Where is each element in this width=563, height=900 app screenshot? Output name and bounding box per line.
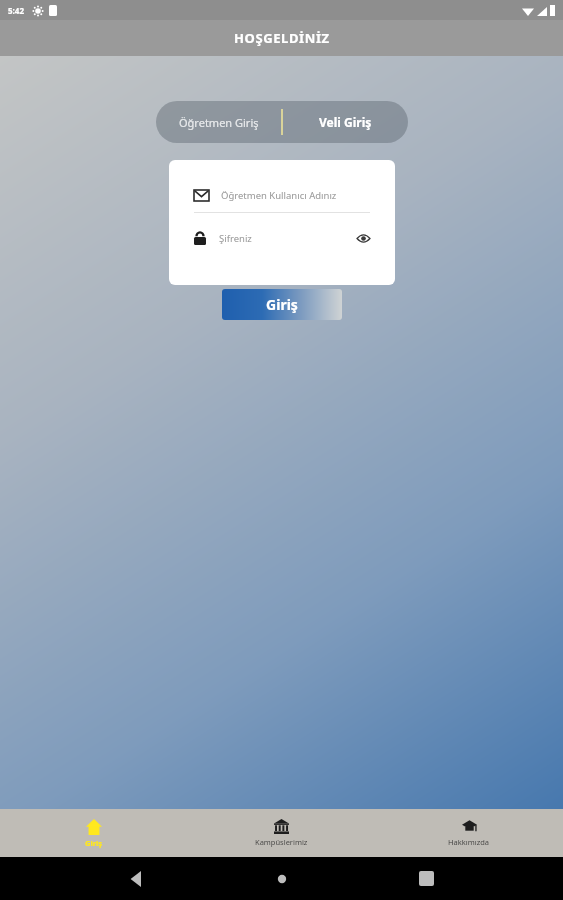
other: Şifreyi göster [357, 234, 370, 243]
other: Giriş [86, 819, 102, 835]
button[interactable]: Kullanıcı adı [194, 182, 370, 208]
staticText: HOŞGELDİNİZ [234, 29, 330, 47]
staticText: Şifreniz [219, 232, 357, 245]
button[interactable]: Öğretmen Giriş [156, 101, 281, 143]
staticText: Giriş [266, 295, 298, 314]
button[interactable]: Giriş [222, 289, 342, 320]
staticText: Öğretmen Kullanıcı Adınız [221, 189, 337, 202]
staticText: Veli Giriş [319, 114, 372, 130]
other: Kampüslerimiz [274, 819, 289, 834]
other: Back [129, 871, 145, 887]
other: Şifre [194, 231, 206, 245]
staticText: Giriş [85, 838, 103, 848]
staticText: Kampüslerimiz [255, 837, 308, 847]
other: Hakkımızda [462, 819, 477, 834]
staticText: Hakkımızda [448, 837, 490, 847]
button[interactable]: Şifre [194, 223, 370, 253]
other: Home [274, 871, 290, 887]
other: Recents [419, 871, 434, 886]
staticText: Öğretmen Giriş [179, 115, 259, 130]
button[interactable]: Giriş [0, 809, 187, 857]
button[interactable]: Hakkımızda [375, 809, 563, 857]
staticText: 5:42 [8, 5, 24, 16]
other: Kullanıcı adı [194, 190, 209, 201]
button[interactable]: Kampüslerimiz [187, 809, 375, 857]
button[interactable]: Veli Giriş [283, 101, 408, 143]
